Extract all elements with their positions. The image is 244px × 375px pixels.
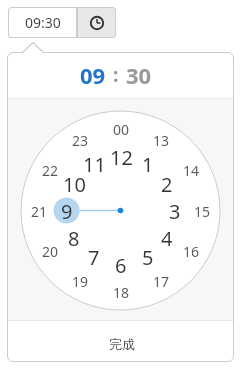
button[interactable]: 19	[67, 268, 93, 294]
button[interactable]	[77, 7, 116, 38]
button[interactable]: 10	[61, 171, 87, 197]
staticText: 19	[72, 272, 89, 291]
staticText: 5	[142, 244, 154, 270]
button[interactable]: 11	[81, 151, 107, 177]
button[interactable]: 00	[108, 116, 134, 142]
button[interactable]: 完成	[7, 321, 234, 362]
staticText: :	[113, 62, 119, 88]
button[interactable]: 7	[81, 244, 107, 270]
button[interactable]: 18	[108, 279, 134, 305]
button[interactable]: 30	[126, 60, 152, 90]
staticText: 14	[183, 161, 200, 180]
staticText: 20	[42, 242, 59, 261]
staticText: 9	[61, 198, 73, 224]
staticText: 完成	[109, 336, 135, 352]
staticText: 22	[42, 161, 59, 180]
staticText: 00	[113, 120, 130, 139]
button[interactable]: 16	[178, 238, 204, 264]
button[interactable]: 14	[178, 157, 204, 183]
staticText: 23	[72, 131, 89, 150]
button[interactable]: 09	[80, 60, 106, 90]
staticText: 1	[142, 151, 154, 177]
staticText: 21	[31, 202, 48, 221]
button[interactable]: 4	[154, 225, 180, 251]
button[interactable]: 2	[154, 171, 180, 197]
button[interactable]: 15	[189, 198, 215, 224]
staticText: 16	[183, 242, 200, 261]
staticText: 8	[68, 225, 80, 251]
staticText: 17	[153, 272, 170, 291]
button[interactable]: 17	[148, 268, 174, 294]
staticText: 6	[115, 252, 127, 278]
button[interactable]: 3	[162, 198, 188, 224]
button[interactable]: 6	[108, 252, 134, 278]
staticText: 13	[153, 131, 170, 150]
staticText: 09:30	[25, 13, 61, 32]
button[interactable]: 22	[37, 157, 63, 183]
staticText: 15	[194, 202, 211, 221]
button[interactable]: 8	[61, 225, 87, 251]
button[interactable]: 09:30	[8, 7, 77, 38]
button[interactable]: 12	[108, 144, 134, 170]
staticText: 3	[169, 198, 181, 224]
staticText: 18	[113, 283, 130, 302]
staticText: 2	[161, 171, 173, 197]
staticText: 12	[110, 144, 133, 170]
staticText: 4	[161, 225, 173, 251]
button[interactable]: 5	[135, 244, 161, 270]
button[interactable]: 21	[26, 198, 52, 224]
staticText: 10	[63, 171, 86, 197]
staticText: 7	[88, 244, 100, 270]
button[interactable]: 1	[135, 151, 161, 177]
button[interactable]: 20	[37, 238, 63, 264]
staticText: 11	[83, 151, 106, 177]
button[interactable]: 23	[67, 127, 93, 153]
button[interactable]: 13	[148, 127, 174, 153]
button[interactable]: 9	[54, 198, 80, 224]
